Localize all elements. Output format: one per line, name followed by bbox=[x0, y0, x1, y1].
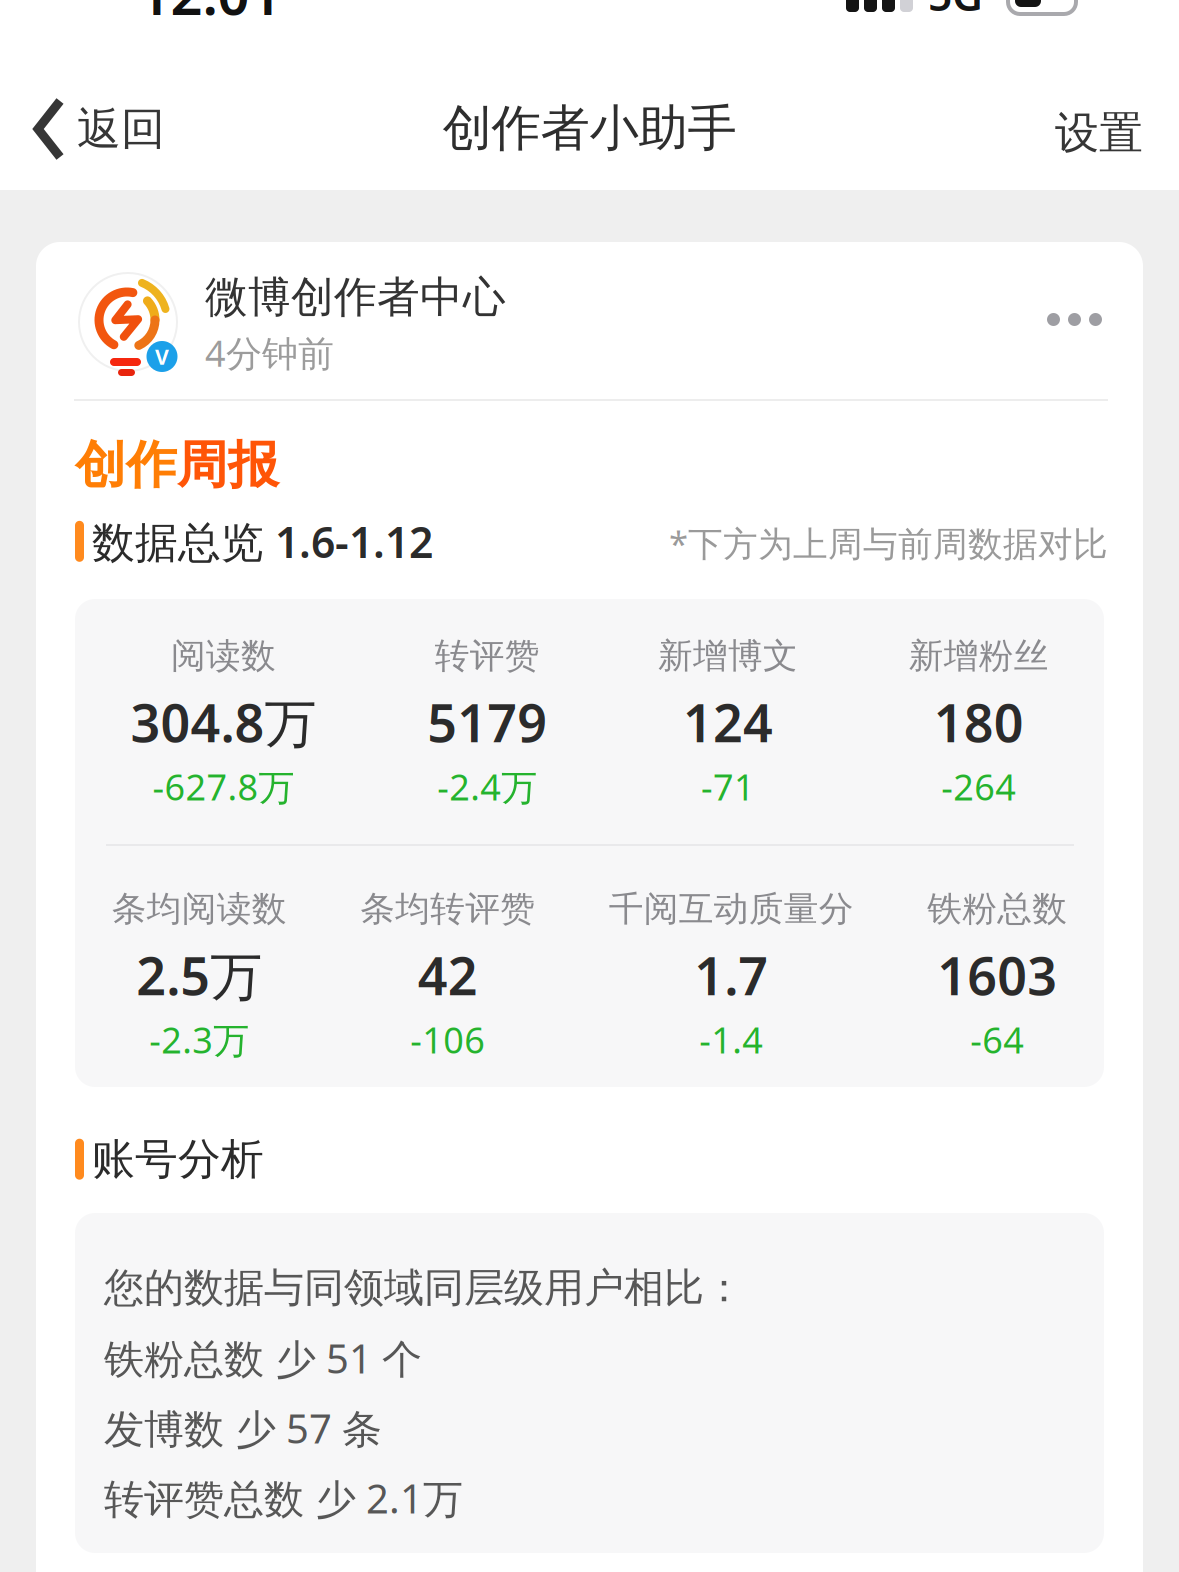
staticText: 转评赞 bbox=[435, 635, 540, 677]
staticText: 4分钟前 bbox=[205, 329, 334, 377]
staticText: -2.4万 bbox=[437, 763, 537, 810]
staticText: 微博创作者中心 bbox=[205, 271, 506, 323]
staticText: 条均阅读数 bbox=[112, 888, 287, 930]
staticText: 铁粉总数 bbox=[927, 888, 1067, 930]
staticText: 阅读数 bbox=[171, 635, 276, 677]
staticText: 铁粉总数 少 51 个 bbox=[104, 1331, 422, 1384]
staticText: 新增博文 bbox=[658, 635, 798, 677]
button[interactable]: More bbox=[1047, 313, 1102, 326]
staticText: -264 bbox=[941, 763, 1016, 810]
staticText: 千阅互动质量分 bbox=[609, 888, 854, 930]
button[interactable]: 设置 bbox=[1055, 106, 1143, 160]
staticText: 创作 bbox=[75, 434, 177, 496]
staticText: 设置 bbox=[1055, 106, 1143, 160]
staticText: 发博数 少 57 条 bbox=[104, 1401, 382, 1454]
staticText: 条均转评赞 bbox=[360, 888, 535, 930]
staticText: 周报 bbox=[177, 434, 279, 496]
staticText: V bbox=[155, 342, 169, 371]
staticText: -106 bbox=[410, 1016, 485, 1063]
staticText: 1603 bbox=[937, 940, 1057, 1010]
staticText: -2.3万 bbox=[149, 1016, 249, 1063]
staticText: -1.4 bbox=[699, 1016, 763, 1063]
staticText: 5179 bbox=[427, 687, 547, 757]
staticText: 42 bbox=[418, 940, 478, 1010]
staticText: 您的数据与同领域同层级用户相比： bbox=[104, 1263, 744, 1312]
staticText: 新增粉丝 bbox=[909, 635, 1049, 677]
staticText: 2.5万 bbox=[136, 940, 262, 1010]
staticText: 5G bbox=[928, 0, 983, 23]
staticText: 180 bbox=[934, 687, 1024, 757]
staticText: -71 bbox=[701, 763, 755, 810]
staticText: 12:01 bbox=[138, 0, 281, 30]
staticText: -627.8万 bbox=[152, 763, 294, 810]
staticText: -64 bbox=[970, 1016, 1024, 1063]
staticText: 数据总览 1.6-1.12 bbox=[92, 513, 433, 570]
staticText: 账号分析 bbox=[92, 1133, 264, 1185]
staticText: 转评赞总数 少 2.1万 bbox=[104, 1471, 463, 1524]
staticText: 返回 bbox=[77, 102, 165, 156]
staticText: 创作者小助手 bbox=[442, 98, 736, 159]
staticText: 304.8万 bbox=[130, 687, 316, 757]
staticText: 1.7 bbox=[694, 940, 768, 1010]
button[interactable]: 返回 bbox=[34, 97, 165, 161]
staticText: 124 bbox=[683, 687, 773, 757]
staticText: *下方为上周与前周数据对比 bbox=[669, 520, 1108, 566]
